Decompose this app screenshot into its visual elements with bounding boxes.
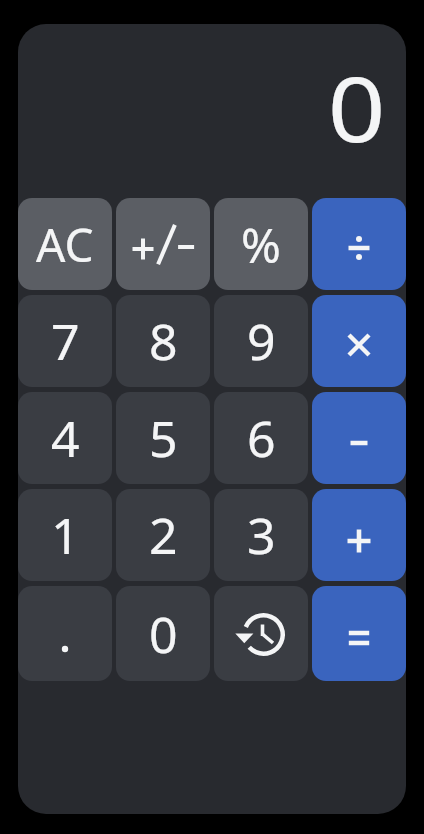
staticText: 1 [51, 501, 80, 569]
button[interactable] [312, 586, 406, 681]
staticText: 0 [149, 600, 178, 668]
staticText: 7 [51, 307, 80, 375]
button[interactable]: % [214, 198, 308, 290]
button[interactable]: 6 [214, 392, 308, 484]
button[interactable]: 2 [116, 489, 210, 581]
staticText: AC [36, 213, 94, 276]
staticText: 9 [247, 307, 276, 375]
staticText: 3 [247, 501, 276, 569]
button[interactable]: 8 [116, 295, 210, 387]
button[interactable] [312, 295, 406, 387]
button[interactable]: 9 [214, 295, 308, 387]
button[interactable]: 3 [214, 489, 308, 581]
staticText: 0 [328, 46, 386, 169]
staticText: 8 [149, 307, 178, 375]
button[interactable]: 1 [18, 489, 112, 581]
staticText: 5 [149, 404, 178, 472]
button[interactable] [312, 198, 406, 290]
staticText: % [241, 212, 281, 277]
button[interactable] [312, 489, 406, 581]
staticText: 2 [149, 501, 178, 569]
button[interactable] [116, 198, 210, 290]
button[interactable]: AC [18, 198, 112, 290]
button[interactable]: 5 [116, 392, 210, 484]
button[interactable] [214, 586, 308, 681]
button[interactable]: 0 [116, 586, 210, 681]
button[interactable]: 4 [18, 392, 112, 484]
staticText: 4 [51, 404, 80, 472]
staticText: 6 [247, 404, 276, 472]
button[interactable] [312, 392, 406, 484]
button[interactable] [18, 586, 112, 681]
button[interactable]: 7 [18, 295, 112, 387]
